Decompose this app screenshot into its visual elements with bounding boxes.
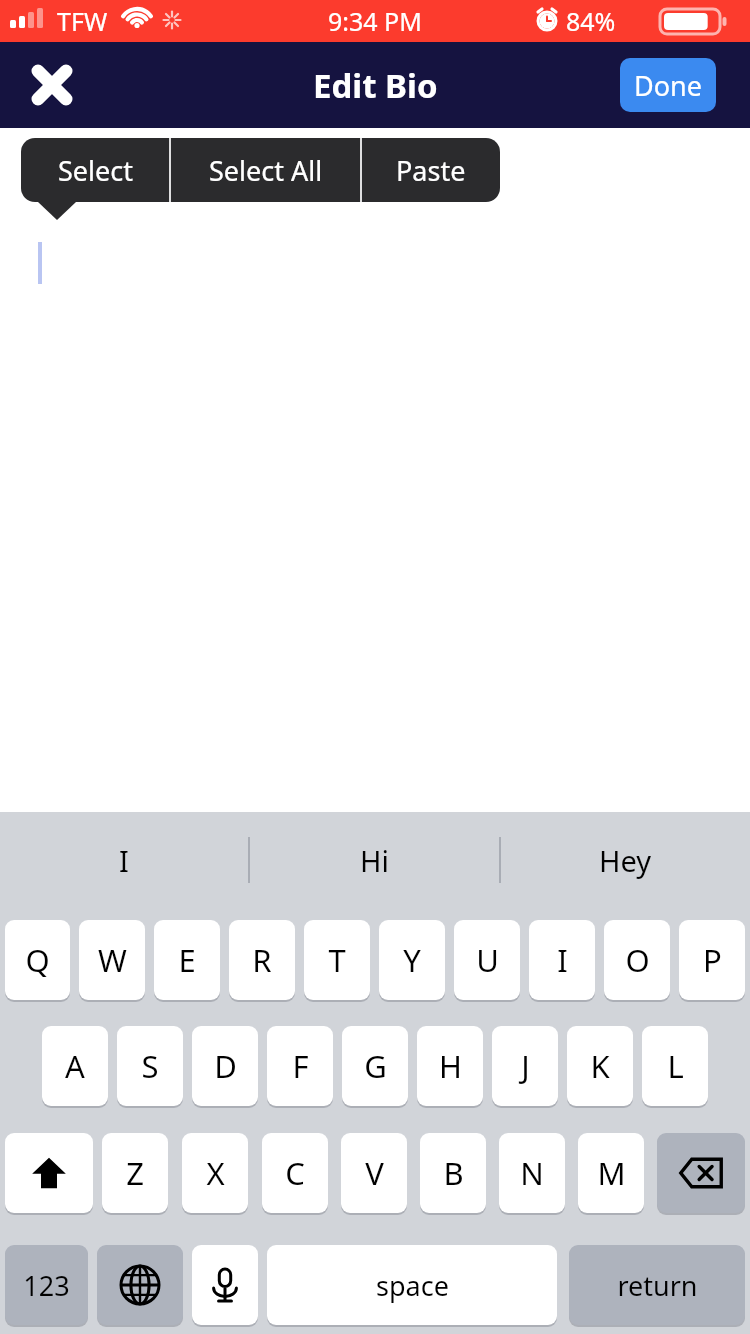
staticText: L [667, 1045, 684, 1087]
button[interactable]: H [417, 1026, 483, 1106]
button[interactable]: C [262, 1133, 328, 1213]
button[interactable]: N [499, 1133, 565, 1213]
button[interactable]: Y [379, 920, 445, 1000]
staticText: X [206, 1152, 225, 1194]
button[interactable]: key [657, 1133, 745, 1213]
button[interactable]: X [182, 1133, 248, 1213]
staticText: U [476, 939, 499, 981]
button[interactable]: U [454, 920, 520, 1000]
button[interactable]: W [79, 920, 145, 1000]
staticText: O [625, 939, 650, 981]
button[interactable]: D [192, 1026, 258, 1106]
button[interactable]: J [492, 1026, 558, 1106]
staticText: M [597, 1152, 626, 1194]
button[interactable]: A [42, 1026, 108, 1106]
button[interactable]: P [679, 920, 745, 1000]
button[interactable]: T [304, 920, 370, 1000]
button[interactable]: Backspace [657, 1133, 745, 1213]
button[interactable]: key [97, 1245, 183, 1325]
button[interactable]: Dictate [192, 1245, 258, 1325]
button[interactable]: Z [102, 1133, 168, 1213]
staticText: Hey [599, 841, 652, 880]
staticText: Paste [396, 152, 466, 189]
button[interactable]: space [267, 1245, 560, 1325]
button[interactable]: Q [5, 920, 70, 1000]
button[interactable]: Shift [5, 1133, 93, 1213]
staticText: I [557, 939, 568, 981]
staticText: C [285, 1152, 305, 1194]
button[interactable]: I [529, 920, 595, 1000]
button[interactable]: S [117, 1026, 183, 1106]
staticText: Hi [360, 841, 389, 880]
staticText: S [141, 1045, 159, 1087]
button[interactable]: O [604, 920, 670, 1000]
staticText: Edit Bio [313, 63, 438, 108]
staticText: I [119, 841, 129, 880]
button[interactable]: Close [22, 55, 82, 115]
staticText: Q [25, 939, 50, 981]
staticText: B [443, 1152, 464, 1194]
button[interactable]: Change keyboard language [97, 1245, 183, 1325]
button[interactable]: I [0, 812, 248, 908]
staticText: Done [634, 67, 702, 104]
staticText: W [98, 939, 127, 981]
button[interactable]: E [154, 920, 220, 1000]
staticText: Y [403, 939, 421, 981]
button[interactable]: space [267, 1245, 557, 1325]
button[interactable]: F [267, 1026, 333, 1106]
staticText: Z [126, 1152, 144, 1194]
staticText: Select All [209, 152, 323, 189]
button[interactable]: V [341, 1133, 407, 1213]
button[interactable]: key [192, 1245, 258, 1325]
button[interactable]: K [567, 1026, 633, 1106]
staticText: 9:34 PM [328, 4, 422, 38]
button[interactable]: Done [620, 58, 716, 112]
staticText: F [292, 1045, 309, 1087]
staticText: TFW [57, 4, 108, 38]
button[interactable]: Select [21, 138, 169, 202]
button[interactable]: Paste [362, 138, 500, 202]
staticText: Select [58, 152, 133, 189]
button[interactable]: Hi [250, 812, 499, 908]
staticText: 84% [566, 4, 616, 38]
staticText: A [65, 1045, 85, 1087]
button[interactable]: Hey [501, 812, 750, 908]
staticText: return [617, 1267, 698, 1304]
button[interactable]: key [5, 1133, 93, 1213]
staticText: K [590, 1045, 610, 1087]
button[interactable]: 123 [5, 1245, 88, 1325]
staticText: space [376, 1267, 449, 1304]
button[interactable]: R [229, 920, 295, 1000]
button[interactable]: return [569, 1245, 745, 1325]
button[interactable]: 123 [5, 1245, 88, 1325]
button[interactable]: G [342, 1026, 408, 1106]
staticText: V [365, 1152, 384, 1194]
staticText: T [328, 939, 346, 981]
button[interactable]: B [420, 1133, 486, 1213]
staticText: N [520, 1152, 544, 1194]
button[interactable]: M [578, 1133, 644, 1213]
staticText: D [214, 1045, 237, 1087]
staticText: E [178, 939, 196, 981]
staticText: 123 [23, 1267, 70, 1304]
staticText: P [703, 939, 722, 981]
staticText: R [252, 939, 272, 981]
staticText: J [521, 1045, 530, 1087]
button[interactable]: return [569, 1245, 745, 1325]
staticText: G [364, 1045, 387, 1087]
button[interactable]: L [642, 1026, 708, 1106]
staticText: H [439, 1045, 462, 1087]
button[interactable]: Select All [171, 138, 360, 202]
